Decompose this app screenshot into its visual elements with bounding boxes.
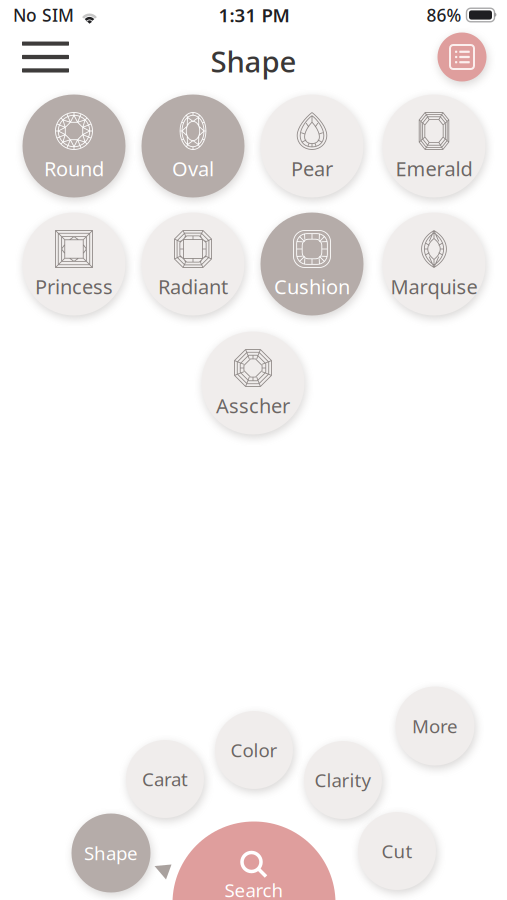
staticText: Asscher <box>216 392 290 419</box>
staticText: Clarity <box>314 768 371 792</box>
button[interactable]: Carat <box>126 740 204 818</box>
staticText: Pear <box>291 155 333 182</box>
staticText: 1:31 PM <box>218 3 289 27</box>
staticText: Search <box>224 878 283 900</box>
button[interactable]: Cushion <box>260 212 363 315</box>
button[interactable]: Clarity <box>304 741 382 819</box>
button[interactable]: List view <box>437 32 486 81</box>
button[interactable]: Asscher <box>201 331 304 434</box>
button[interactable]: Color <box>215 711 293 789</box>
staticText: 86% <box>426 3 461 26</box>
button[interactable]: Menu <box>22 42 69 72</box>
staticText: No SIM <box>13 3 74 26</box>
staticText: Shape <box>84 841 138 865</box>
staticText: Radiant <box>158 273 228 300</box>
button[interactable]: Round <box>22 94 125 197</box>
staticText: Round <box>44 155 104 182</box>
button[interactable]: Emerald <box>382 94 485 197</box>
staticText: Oval <box>172 155 214 182</box>
button[interactable]: Princess <box>22 212 125 315</box>
staticText: Cushion <box>274 273 350 300</box>
staticText: Carat <box>142 767 188 791</box>
staticText: Cut <box>381 839 412 863</box>
staticText: More <box>412 714 458 738</box>
button[interactable]: Radiant <box>141 212 244 315</box>
button[interactable]: Search <box>172 821 335 900</box>
button[interactable]: Cut <box>358 812 436 890</box>
button[interactable]: Oval <box>141 94 244 197</box>
button[interactable]: More <box>395 686 474 765</box>
staticText: Shape <box>210 41 296 80</box>
staticText: Emerald <box>395 155 472 182</box>
button[interactable]: Shape <box>71 813 150 892</box>
staticText: Princess <box>35 273 113 300</box>
button[interactable]: Pear <box>260 94 363 197</box>
button[interactable]: Marquise <box>382 212 485 315</box>
staticText: Marquise <box>390 273 477 300</box>
staticText: Color <box>230 738 277 762</box>
